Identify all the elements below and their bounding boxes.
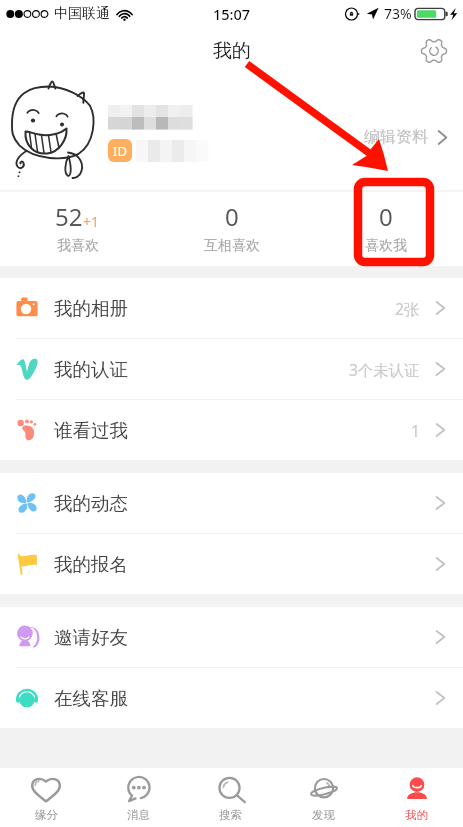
button[interactable]: 搜索 — [184, 768, 277, 827]
staticText: 我的 — [213, 39, 251, 63]
staticText: 在线客服 — [54, 687, 128, 710]
button[interactable]: 邀请好友 — [0, 607, 463, 667]
staticText: 我的 — [405, 808, 428, 822]
button[interactable]: 谁看过我 — [0, 400, 463, 460]
staticText: ID — [113, 142, 127, 160]
staticText: 编辑资料 — [364, 127, 428, 147]
button[interactable]: 缘分 — [0, 768, 92, 827]
staticText: 中国联通 — [54, 5, 110, 23]
button[interactable]: Settings — [417, 34, 451, 68]
button[interactable]: 我的相册 — [0, 278, 463, 338]
staticText: 73% — [384, 4, 412, 23]
staticText: 15:07 — [213, 4, 251, 24]
button[interactable]: 在线客服 — [0, 668, 463, 728]
staticText: 52 — [55, 200, 83, 233]
staticText: 1 — [411, 420, 420, 441]
staticText: 2张 — [395, 298, 420, 319]
button[interactable]: 我的 — [370, 768, 463, 827]
staticText: 我喜欢 — [57, 237, 99, 255]
button[interactable]: 我的认证 — [0, 339, 463, 399]
staticText: 搜索 — [219, 808, 242, 822]
staticText: 我的动态 — [54, 492, 128, 515]
staticText: 缘分 — [35, 808, 58, 822]
staticText: 消息 — [127, 808, 150, 822]
button[interactable]: 52 — [0, 191, 155, 266]
button[interactable]: ID — [0, 72, 463, 191]
button[interactable]: 0 — [155, 191, 309, 266]
staticText: 邀请好友 — [54, 626, 128, 649]
staticText: +1 — [83, 212, 100, 231]
staticText: 我的认证 — [54, 358, 128, 381]
staticText: 我的相册 — [54, 297, 128, 320]
staticText: 0 — [225, 200, 239, 233]
button[interactable]: 消息 — [92, 768, 184, 827]
staticText: 0 — [379, 200, 393, 233]
button[interactable]: 我的动态 — [0, 473, 463, 533]
staticText: 我的报名 — [54, 553, 128, 576]
staticText: 谁看过我 — [54, 419, 128, 442]
staticText: 发现 — [312, 808, 335, 822]
staticText: 3个未认证 — [349, 359, 420, 380]
button[interactable]: 0 — [309, 191, 463, 266]
button[interactable]: 发现 — [277, 768, 370, 827]
button[interactable]: 我的报名 — [0, 534, 463, 594]
staticText: 互相喜欢 — [204, 237, 260, 255]
staticText: 喜欢我 — [365, 237, 407, 255]
